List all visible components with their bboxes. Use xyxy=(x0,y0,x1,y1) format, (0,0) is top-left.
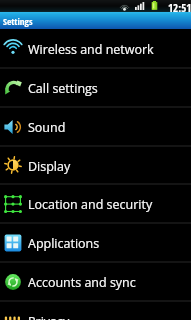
staticText: Wireless and network xyxy=(28,41,154,58)
staticText: 12:51 xyxy=(168,0,191,12)
button[interactable]: Privacy xyxy=(0,302,191,320)
staticText: Call settings xyxy=(28,80,98,97)
button[interactable]: Call settings xyxy=(0,69,191,106)
button[interactable]: Applications xyxy=(0,224,191,261)
button[interactable]: Wireless and network xyxy=(0,29,191,67)
staticText: Location and security xyxy=(28,196,153,213)
button[interactable]: Display xyxy=(0,147,191,183)
staticText: Applications xyxy=(28,235,100,252)
staticText: Accounts and sync xyxy=(28,274,136,291)
button[interactable]: Location and security xyxy=(0,185,191,222)
button[interactable]: Sound xyxy=(0,108,191,145)
staticText: Display xyxy=(28,158,71,175)
button[interactable]: Accounts and sync xyxy=(0,263,191,300)
staticText: Privacy xyxy=(28,313,70,320)
staticText: Settings xyxy=(3,15,33,28)
staticText: Sound xyxy=(28,119,66,136)
